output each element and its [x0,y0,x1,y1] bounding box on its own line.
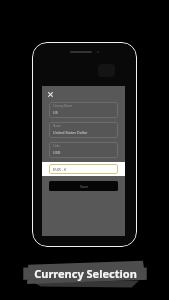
staticText: Country Name [53,104,73,108]
staticText: USD [53,150,61,155]
button[interactable]: EUR - € [49,164,118,174]
button[interactable]: Name [49,122,118,138]
button[interactable]: Save [49,181,118,191]
staticText: Currency Selection [34,266,137,281]
staticText: United States Dollar [53,130,88,135]
button[interactable]: Country Name [49,102,118,118]
staticText: EUR - € [53,167,67,172]
button[interactable]: Code [49,142,118,158]
staticText: Name [53,124,61,128]
button[interactable]: Close [46,90,55,99]
staticText: Code [53,144,60,148]
staticText: US [53,110,58,115]
staticText: Save [80,184,88,189]
